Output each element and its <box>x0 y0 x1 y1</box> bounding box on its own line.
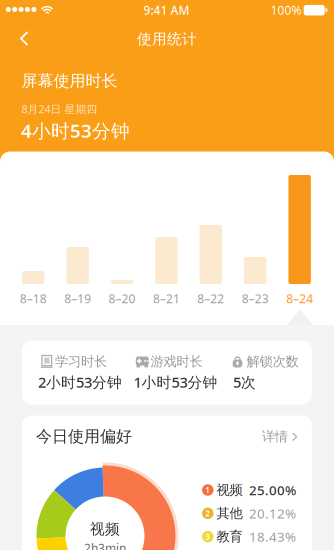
staticText: 20.12% <box>249 504 296 522</box>
staticText: 1 <box>205 485 210 495</box>
staticText: 屏幕使用时长 <box>21 71 117 91</box>
staticText: 其他 <box>216 505 242 521</box>
staticText: 视频 <box>90 520 120 538</box>
staticText: 8–19 <box>64 290 91 306</box>
staticText: 25.00% <box>249 481 296 499</box>
button[interactable] <box>155 237 178 284</box>
button[interactable] <box>111 280 133 284</box>
staticText: 游戏时长 <box>150 353 202 370</box>
staticText: 8–24 <box>286 290 313 306</box>
staticText: 使用统计 <box>137 30 197 48</box>
button[interactable] <box>288 175 311 284</box>
button[interactable]: 详情 <box>262 428 298 445</box>
staticText: 2小时53分钟 <box>38 372 122 392</box>
staticText: 8月24日 星期四 <box>21 102 97 116</box>
staticText: 今日使用偏好 <box>36 427 132 446</box>
button[interactable] <box>7 28 43 49</box>
staticText: 8–22 <box>197 290 224 306</box>
staticText: 详情 <box>262 428 288 445</box>
staticText: 8–23 <box>242 290 269 306</box>
staticText: 视频 <box>216 482 242 498</box>
staticText: 8–20 <box>108 290 135 306</box>
staticText: 2h3min <box>84 540 126 550</box>
staticText: 18.43% <box>249 528 296 545</box>
staticText: 2 <box>205 508 210 519</box>
staticText: 解锁次数 <box>246 353 298 370</box>
staticText: 4小时53分钟 <box>21 118 130 143</box>
staticText: 100% <box>270 2 301 18</box>
staticText: 1小时53分钟 <box>133 372 217 392</box>
button[interactable] <box>22 271 44 284</box>
staticText: 5次 <box>233 372 256 392</box>
staticText: 学习时长 <box>55 353 107 370</box>
staticText: 8–21 <box>153 290 180 306</box>
staticText: 9:41 AM <box>143 2 189 18</box>
staticText: 3 <box>205 531 210 542</box>
staticText: 教育 <box>216 528 242 545</box>
button[interactable] <box>66 247 89 284</box>
staticText: 8–18 <box>20 290 47 306</box>
